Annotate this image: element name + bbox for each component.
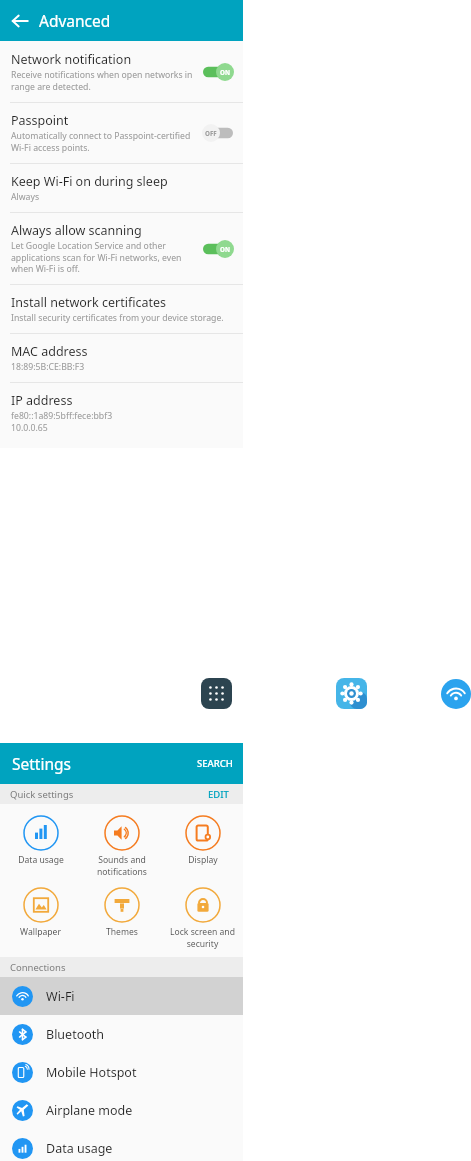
- button[interactable]: Lock screen and security: [162, 884, 243, 952]
- staticText: ON: [220, 245, 230, 253]
- button[interactable]: Apps: [201, 678, 232, 709]
- staticText: Airplane mode: [46, 1102, 133, 1119]
- button[interactable]: Wallpaper: [0, 884, 81, 941]
- staticText: Sounds and notifications: [97, 854, 147, 877]
- staticText: Themes: [106, 926, 138, 938]
- button[interactable]: On: [201, 62, 235, 82]
- button[interactable]: Airplane mode: [0, 1091, 243, 1129]
- button[interactable]: Settings: [336, 678, 367, 709]
- staticText: ON: [220, 68, 230, 76]
- staticText: Connections: [10, 961, 66, 974]
- button[interactable]: IP address: [0, 383, 243, 443]
- staticText: Receive notifications when open networks…: [11, 69, 193, 93]
- staticText: IP address: [11, 392, 73, 409]
- button[interactable]: Network notification: [0, 42, 243, 102]
- button[interactable]: On: [201, 239, 235, 259]
- staticText: Data usage: [46, 1140, 113, 1157]
- button[interactable]: Themes: [81, 884, 162, 941]
- staticText: SEARCH: [197, 757, 233, 770]
- staticText: Install network certificates: [11, 294, 166, 311]
- staticText: Passpoint: [11, 112, 69, 129]
- button[interactable]: Always allow scanning: [0, 213, 243, 284]
- staticText: Lock screen and security: [170, 926, 235, 949]
- button[interactable]: SEARCH: [187, 749, 243, 778]
- button[interactable]: Display: [162, 812, 243, 869]
- button[interactable]: EDIT: [204, 785, 233, 804]
- staticText: Wi-Fi: [46, 988, 75, 1005]
- button[interactable]: Passpoint: [0, 103, 243, 163]
- button[interactable]: Data usage: [0, 812, 81, 869]
- button[interactable]: Keep Wi-Fi on during sleep: [0, 164, 243, 212]
- staticText: Display: [188, 854, 218, 866]
- staticText: Network notification: [11, 51, 132, 68]
- staticText: Advanced: [39, 10, 111, 31]
- staticText: EDIT: [208, 788, 229, 801]
- staticText: MAC address: [11, 343, 88, 360]
- staticText: OFF: [205, 129, 217, 137]
- staticText: Wallpaper: [20, 926, 61, 938]
- button[interactable]: Data usage: [0, 1129, 243, 1161]
- button[interactable]: Back: [7, 8, 33, 34]
- button[interactable]: Off: [201, 123, 235, 143]
- button[interactable]: Install network certificates: [0, 285, 243, 333]
- staticText: fe80::1a89:5bff:fece:bbf3 10.0.0.65: [11, 410, 113, 434]
- button[interactable]: Wi-Fi: [0, 977, 243, 1015]
- button[interactable]: Wi-Fi: [441, 679, 471, 709]
- staticText: Mobile Hotspot: [46, 1064, 137, 1081]
- staticText: Settings: [12, 753, 71, 774]
- staticText: Quick settings: [10, 788, 74, 801]
- staticText: Install security certificates from your …: [11, 312, 224, 324]
- staticText: Always: [11, 191, 40, 203]
- staticText: Bluetooth: [46, 1026, 105, 1043]
- button[interactable]: Mobile Hotspot: [0, 1053, 243, 1091]
- staticText: Data usage: [18, 854, 64, 866]
- staticText: Keep Wi-Fi on during sleep: [11, 173, 168, 190]
- staticText: Automatically connect to Passpoint-certi…: [11, 130, 191, 154]
- staticText: Always allow scanning: [11, 222, 142, 239]
- button[interactable]: Bluetooth: [0, 1015, 243, 1053]
- button[interactable]: Sounds and notifications: [81, 812, 162, 880]
- staticText: 18:89:5B:CE:BB:F3: [11, 361, 85, 373]
- staticText: Let Google Location Service and other ap…: [11, 240, 182, 275]
- button[interactable]: MAC address: [0, 334, 243, 382]
